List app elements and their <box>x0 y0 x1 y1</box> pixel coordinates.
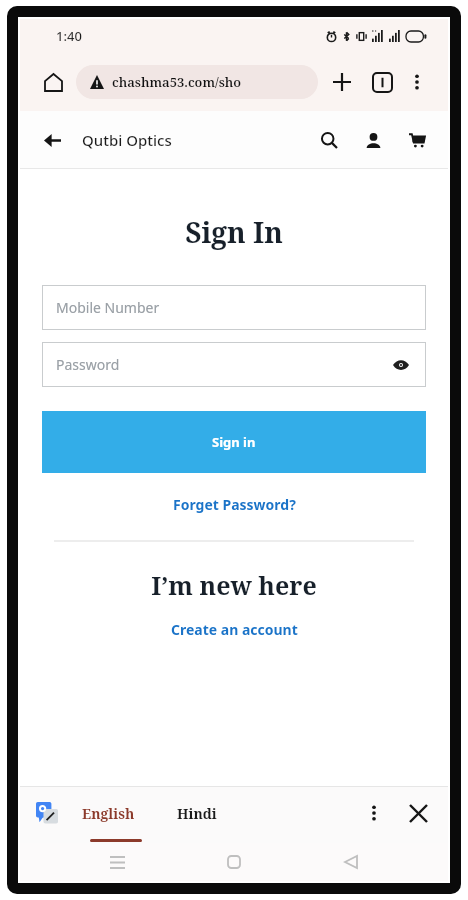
button[interactable]: Mobile Number <box>42 285 426 330</box>
button[interactable]: Tabs <box>366 66 398 98</box>
button[interactable]: Close <box>402 797 434 829</box>
staticText: Sign in <box>212 433 256 451</box>
button[interactable]: English <box>82 804 135 823</box>
staticText: Sign In <box>42 213 426 251</box>
button[interactable]: Home <box>214 843 254 881</box>
staticText: 1:40 <box>56 27 82 45</box>
button[interactable]: Search <box>312 123 346 157</box>
button[interactable]: Translate options <box>358 797 390 829</box>
button[interactable]: Forget Password? <box>42 495 426 514</box>
button[interactable]: Create an account <box>42 620 426 639</box>
staticText: Forget Password? <box>173 495 296 514</box>
staticText: Password <box>56 355 120 374</box>
button[interactable]: New tab <box>326 66 358 98</box>
button[interactable]: chashma53.com/sho <box>76 65 318 99</box>
button[interactable]: Password <box>42 342 426 387</box>
button[interactable]: Sign in <box>42 411 426 473</box>
button[interactable]: Account <box>356 123 390 157</box>
staticText: Qutbi Optics <box>82 130 172 150</box>
button[interactable]: Google Translate <box>34 800 60 826</box>
button[interactable]: Hindi <box>177 804 217 823</box>
staticText: I’m new here <box>42 568 426 602</box>
staticText: Hindi <box>177 804 217 823</box>
button[interactable]: Home <box>36 65 70 99</box>
button[interactable]: Cart <box>400 123 434 157</box>
button[interactable]: Back <box>34 122 70 158</box>
button[interactable]: Back <box>331 843 371 881</box>
button[interactable]: More options <box>402 67 432 97</box>
staticText: chashma53.com/sho <box>112 73 242 91</box>
staticText: English <box>82 804 135 823</box>
staticText: Create an account <box>171 620 298 639</box>
staticText: Mobile Number <box>56 298 160 317</box>
button[interactable]: Recent apps <box>97 843 137 881</box>
other: Show password <box>390 354 412 376</box>
